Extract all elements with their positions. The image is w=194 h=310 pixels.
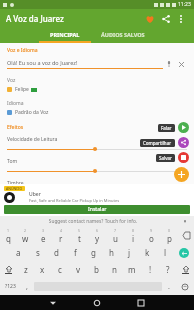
- button[interactable]: m: [123, 261, 141, 278]
- button[interactable]: Shift: [177, 261, 194, 278]
- staticText: w: [22, 233, 29, 244]
- button[interactable]: Actions: [174, 167, 189, 182]
- button[interactable]: x: [34, 261, 51, 278]
- button[interactable]: Idioma: [7, 100, 187, 116]
- button[interactable]: 1: [0, 227, 17, 244]
- button[interactable]: j: [120, 244, 138, 261]
- button[interactable]: f: [66, 244, 84, 261]
- staticText: m: [128, 264, 136, 275]
- staticText: h: [109, 247, 114, 258]
- button[interactable]: Enter: [174, 244, 194, 261]
- button[interactable]: l: [156, 244, 174, 261]
- button[interactable]: c: [51, 261, 69, 278]
- staticText: 3: [42, 228, 45, 233]
- button[interactable]: ÁUDIOS SALVOS: [91, 28, 155, 41]
- button[interactable]: 6: [88, 227, 106, 244]
- staticText: 1: [7, 228, 10, 233]
- button[interactable]: Home: [75, 295, 119, 310]
- staticText: Idioma: [7, 100, 24, 107]
- staticText: !: [149, 264, 152, 275]
- button[interactable]: ,: [20, 278, 34, 295]
- staticText: g: [91, 247, 96, 258]
- staticText: Uber: [29, 191, 41, 198]
- button[interactable]: ?: [159, 261, 177, 278]
- button[interactable]: Instalar: [4, 205, 190, 214]
- button[interactable]: !: [141, 261, 159, 278]
- button[interactable]: Voice input: [163, 58, 175, 70]
- button[interactable]: d: [47, 244, 66, 261]
- button[interactable]: .: [162, 278, 176, 295]
- staticText: Salvar: [159, 155, 172, 161]
- staticText: 8: [132, 228, 135, 233]
- staticText: e: [41, 233, 46, 244]
- staticText: d: [54, 247, 59, 258]
- button[interactable]: Recents: [119, 295, 163, 310]
- button[interactable]: 4: [52, 227, 70, 244]
- staticText: Suggest contact names? Touch for info.: [5, 218, 181, 225]
- button[interactable]: z: [17, 261, 34, 278]
- staticText: k: [145, 247, 150, 258]
- staticText: ?: [166, 264, 170, 275]
- button[interactable]: k: [138, 244, 156, 261]
- button[interactable]: v: [69, 261, 87, 278]
- staticText: A Voz da Juarez: [6, 13, 64, 24]
- button[interactable]: n: [105, 261, 123, 278]
- button[interactable]: 7: [106, 227, 124, 244]
- button[interactable]: 5: [70, 227, 88, 244]
- staticText: 11:23: [178, 1, 191, 8]
- button[interactable]: Shift: [0, 261, 17, 278]
- button[interactable]: ?123: [0, 278, 20, 295]
- staticText: u: [113, 233, 118, 244]
- button[interactable]: Emoji: [176, 278, 194, 295]
- button[interactable]: Salvar: [156, 152, 189, 163]
- staticText: Padrão da Voz: [15, 109, 49, 116]
- button[interactable]: Voice typing: [181, 218, 189, 226]
- button[interactable]: 0: [160, 227, 178, 244]
- button[interactable]: More options: [174, 12, 188, 26]
- button[interactable]: Falar: [158, 122, 189, 133]
- button[interactable]: Back: [31, 295, 75, 310]
- staticText: Voz e Idioma: [7, 47, 38, 54]
- staticText: l: [164, 247, 167, 258]
- button[interactable]: 8: [124, 227, 142, 244]
- button[interactable]: 3: [34, 227, 52, 244]
- staticText: Fast, Safe and Reliable Car Pickup Up in…: [29, 198, 120, 203]
- staticText: ?123: [5, 283, 16, 290]
- staticText: i: [132, 233, 135, 244]
- button[interactable]: 9: [142, 227, 160, 244]
- staticText: y: [95, 233, 100, 244]
- staticText: v: [76, 264, 81, 275]
- button[interactable]: Favorite: [142, 11, 158, 27]
- button[interactable]: 2: [17, 227, 34, 244]
- button[interactable]: Timbre: [7, 180, 187, 184]
- button[interactable]: Backspace: [178, 227, 194, 244]
- button[interactable]: b: [87, 261, 105, 278]
- button[interactable]: h: [102, 244, 120, 261]
- button[interactable]: Compartilhar: [140, 137, 189, 148]
- staticText: Compartilhar: [143, 140, 172, 146]
- button[interactable]: s: [28, 244, 47, 261]
- staticText: r: [59, 233, 63, 244]
- button[interactable]: Velocidade de Leitura: [7, 136, 187, 152]
- button[interactable]: g: [84, 244, 102, 261]
- staticText: Falar: [161, 125, 172, 131]
- button[interactable]: Clear: [175, 58, 187, 70]
- staticText: ÁUDIOS SALVOS: [101, 31, 145, 38]
- staticText: Olá! Eu sou a voz do Juarez!: [7, 59, 78, 66]
- staticText: c: [58, 264, 62, 275]
- button[interactable]: Voz: [7, 77, 187, 93]
- button[interactable]: Tom: [7, 158, 187, 174]
- button[interactable]: a: [9, 244, 28, 261]
- staticText: f: [74, 247, 77, 258]
- staticText: Timbre: [7, 180, 24, 184]
- staticText: j: [128, 247, 131, 258]
- staticText: p: [167, 233, 172, 244]
- staticText: ANÚNCIO: [6, 186, 23, 191]
- button[interactable]: Share: [158, 11, 174, 27]
- staticText: x: [40, 264, 45, 275]
- button[interactable]: PRINCIPAL: [39, 28, 91, 41]
- staticText: Felipe: [15, 86, 29, 93]
- staticText: z: [24, 264, 28, 275]
- staticText: q: [6, 233, 11, 244]
